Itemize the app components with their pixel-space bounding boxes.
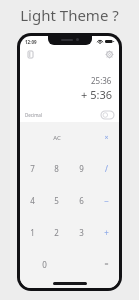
button[interactable]: 4 [20,184,44,216]
staticText: − [104,195,109,206]
button[interactable]: Decimal [25,107,114,122]
button[interactable]: AC [20,122,94,153]
staticText: 6 [79,195,84,206]
button[interactable]: − [94,184,119,216]
button[interactable]: 0 [20,248,69,280]
button[interactable]: 2 [44,216,69,248]
staticText: = [104,259,109,269]
staticText: 12:09 [25,39,37,45]
staticText: 2 [54,227,59,238]
staticText: 0 [42,259,47,270]
staticText: 3 [79,227,84,238]
button[interactable]: = [94,248,119,280]
staticText: + 5:36 [81,87,112,102]
button[interactable]: 8 [44,153,69,184]
staticText: + [104,227,109,238]
staticText: 5 [54,195,59,206]
button[interactable]: 9 [69,153,94,184]
button[interactable]: / [94,153,119,184]
button[interactable]: 6 [69,184,94,216]
staticText: 1 [30,227,35,238]
button[interactable]: + [94,216,119,248]
staticText: 8 [54,163,59,174]
button[interactable]: 3 [69,216,94,248]
staticText: Decimal [25,112,43,118]
staticText: Light Theme ? [20,5,119,25]
staticText: 25:36 [91,75,112,86]
button[interactable]: 1 [20,216,44,248]
button[interactable]: History [24,48,36,60]
staticText: AC [53,134,61,142]
button[interactable]: 7 [20,153,44,184]
staticText: × [104,133,109,143]
staticText: 7 [30,163,35,174]
button[interactable]: × [94,122,119,153]
staticText: 4 [30,195,35,206]
button[interactable]: 5 [44,184,69,216]
button[interactable]: Settings [103,48,115,60]
staticText: 9 [79,163,84,174]
staticText: / [105,163,108,174]
